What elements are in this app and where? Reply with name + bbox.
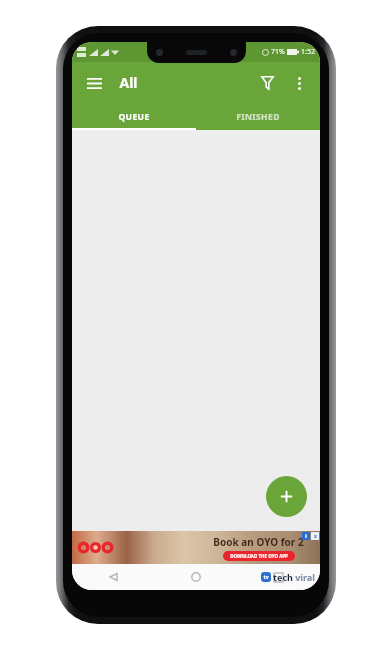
staticText: Book an OYO for 2 <box>213 535 304 549</box>
staticText: tv <box>263 574 269 581</box>
button[interactable]: Back <box>72 564 154 590</box>
staticText: 71% <box>271 47 285 57</box>
button[interactable]: Open navigation drawer <box>79 68 109 98</box>
staticText: All <box>119 73 138 92</box>
staticText: DOWNLOAD THE OYO APP <box>230 553 288 559</box>
button[interactable]: Recent apps <box>237 564 320 590</box>
staticText: x <box>314 533 317 540</box>
button[interactable]: More options <box>284 68 314 98</box>
staticText: i <box>305 533 307 540</box>
staticText: viral <box>295 571 315 583</box>
button[interactable]: OYO advertisement <box>72 531 320 564</box>
button[interactable]: QUEUE <box>72 103 196 130</box>
staticText: QUEUE <box>118 111 150 123</box>
staticText: FINISHED <box>236 111 280 123</box>
button[interactable]: Home <box>154 564 237 590</box>
staticText: 1:52 <box>301 47 315 57</box>
button[interactable]: Add download <box>266 476 307 517</box>
button[interactable]: FINISHED <box>196 103 320 130</box>
staticText: tech <box>273 571 293 583</box>
button[interactable]: Close ad <box>311 532 319 540</box>
button[interactable]: Filter <box>250 66 284 100</box>
